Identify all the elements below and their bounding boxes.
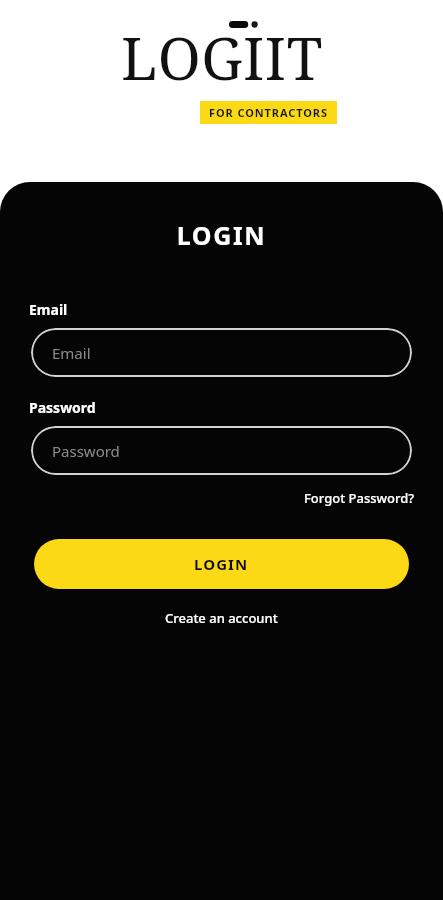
button[interactable]: Create an account <box>159 606 284 630</box>
staticText: Email <box>29 300 68 319</box>
staticText: Password <box>52 441 120 461</box>
staticText: Email <box>52 343 91 363</box>
button[interactable]: LOGIN <box>34 539 409 589</box>
staticText: Forgot Password? <box>304 489 415 507</box>
button[interactable]: Forgot Password? <box>302 487 417 509</box>
staticText: LOGIN <box>0 218 443 252</box>
button[interactable]: Email <box>31 328 412 377</box>
staticText: FOR CONTRACTORS <box>209 105 328 120</box>
staticText: LOGIN <box>194 554 249 574</box>
staticText: LOGIIT <box>121 18 323 97</box>
staticText: Create an account <box>165 609 278 627</box>
button[interactable]: Password <box>31 426 412 475</box>
staticText: Password <box>29 398 96 417</box>
